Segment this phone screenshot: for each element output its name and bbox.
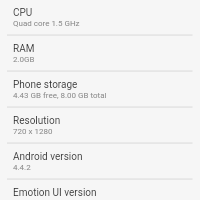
staticText: Emotion UI version — [13, 187, 97, 199]
button[interactable]: RAM — [0, 36, 200, 70]
button[interactable]: Android version — [0, 144, 200, 178]
staticText: CPU — [13, 7, 33, 19]
button[interactable]: Emotion UI version — [0, 180, 200, 200]
staticText: 720 x 1280 — [13, 127, 53, 136]
staticText: Resolution — [13, 115, 61, 127]
staticText: 4.43 GB free, 8.00 GB total — [13, 91, 107, 100]
button[interactable]: Resolution — [0, 108, 200, 142]
staticText: 2.0GB — [13, 55, 35, 64]
staticText: RAM — [13, 43, 35, 55]
button[interactable]: CPU — [0, 0, 200, 34]
staticText: Android version — [13, 151, 83, 163]
button[interactable]: Phone storage — [0, 72, 200, 106]
staticText: Phone storage — [13, 79, 78, 91]
staticText: Quad core 1.5 GHz — [13, 19, 80, 28]
staticText: 4.4.2 — [13, 163, 31, 172]
